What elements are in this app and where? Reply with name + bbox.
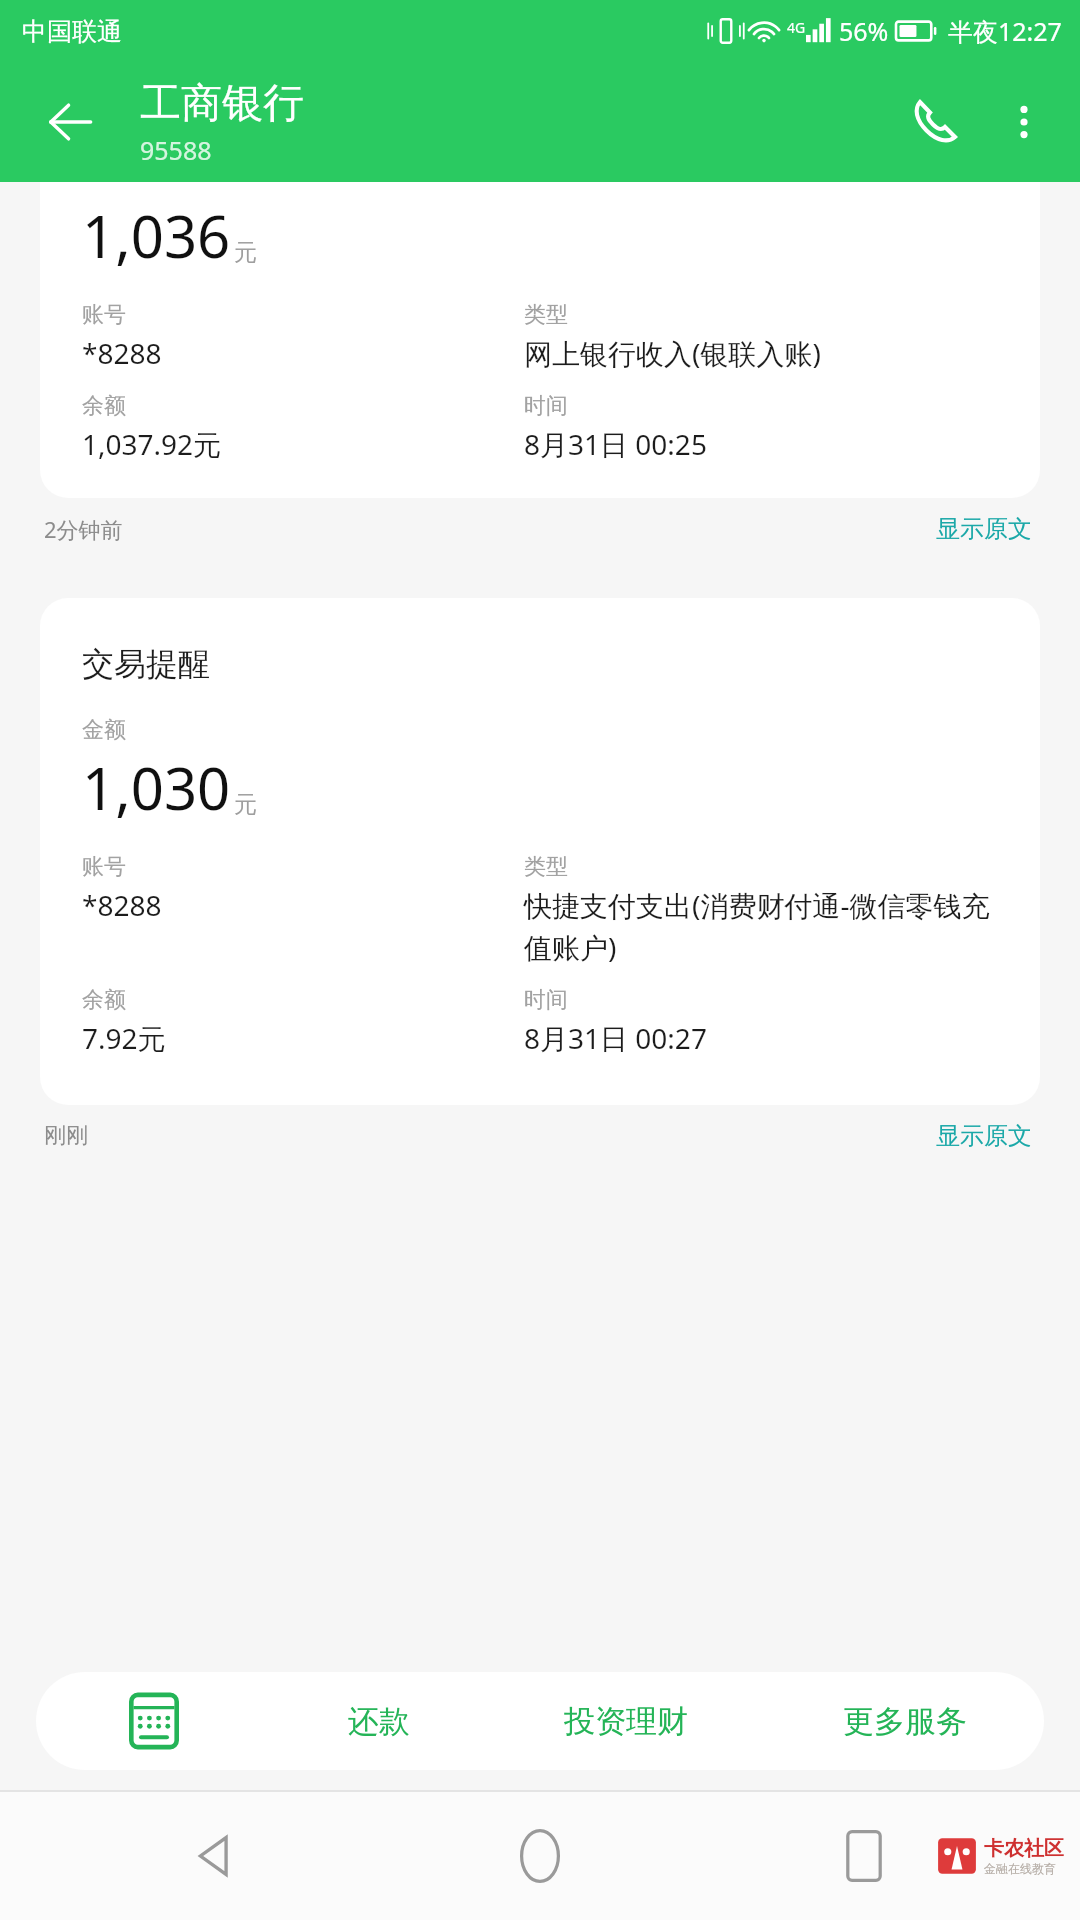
button[interactable]: Recent apps (808, 1800, 920, 1912)
staticText: 2分钟前 (44, 514, 123, 544)
button[interactable]: Back (160, 1800, 272, 1912)
staticText: 卡农社区 (984, 1836, 1064, 1861)
staticText: 投资理财 (564, 1702, 688, 1741)
button[interactable]: 交易提醒 (40, 598, 1040, 1105)
staticText: 56% (839, 14, 889, 48)
button[interactable]: 投资理财 (486, 1672, 765, 1770)
staticText: 8月31日 00:27 (524, 1019, 707, 1057)
staticText: 半夜12:27 (948, 14, 1062, 48)
button[interactable]: Home (484, 1800, 596, 1912)
staticText: 账号 (82, 301, 126, 329)
staticText: 元 (234, 790, 257, 819)
button[interactable]: 显示原文 (932, 1117, 1036, 1155)
button[interactable]: 还款 (272, 1672, 486, 1770)
staticText: 95588 (140, 133, 212, 167)
staticText: 金融在线教育 (984, 1861, 1056, 1876)
button[interactable]: More options (982, 80, 1066, 164)
staticText: 类型 (524, 853, 568, 881)
staticText: 交易提醒 (82, 644, 210, 684)
staticText: 元 (234, 238, 257, 267)
staticText: *8288 (82, 334, 162, 372)
button[interactable]: 更多服务 (765, 1672, 1044, 1770)
staticText: 余额 (82, 392, 126, 420)
staticText: 网上银行收入(银联入账) (524, 334, 821, 372)
staticText: 余额 (82, 986, 126, 1014)
staticText: 账号 (82, 853, 126, 881)
button[interactable]: Back (22, 74, 118, 170)
staticText: 1,036 (82, 196, 231, 275)
staticText: 刚刚 (44, 1122, 88, 1150)
staticText: 显示原文 (936, 514, 1032, 544)
staticText: 8月31日 00:25 (524, 425, 707, 463)
button[interactable]: Keyboard (36, 1672, 272, 1770)
staticText: 中国联通 (22, 16, 122, 47)
staticText: 7.92元 (82, 1019, 166, 1057)
staticText: *8288 (82, 886, 162, 924)
staticText: 1,030 (82, 748, 231, 827)
staticText: 类型 (524, 301, 568, 329)
button[interactable]: 显示原文 (932, 510, 1036, 548)
staticText: 时间 (524, 986, 568, 1014)
button[interactable]: Call (888, 75, 982, 169)
staticText: 还款 (348, 1702, 410, 1741)
staticText: 快捷支付支出(消费财付通-微信零钱充值账户) (524, 886, 1010, 966)
staticText: 更多服务 (843, 1702, 967, 1741)
staticText: 显示原文 (936, 1121, 1032, 1151)
button[interactable]: 1,036 (40, 182, 1040, 498)
staticText: 时间 (524, 392, 568, 420)
staticText: 4G (787, 18, 806, 37)
staticText: 金额 (82, 716, 126, 744)
staticText: 工商银行 (140, 78, 304, 130)
staticText: 1,037.92元 (82, 425, 222, 463)
